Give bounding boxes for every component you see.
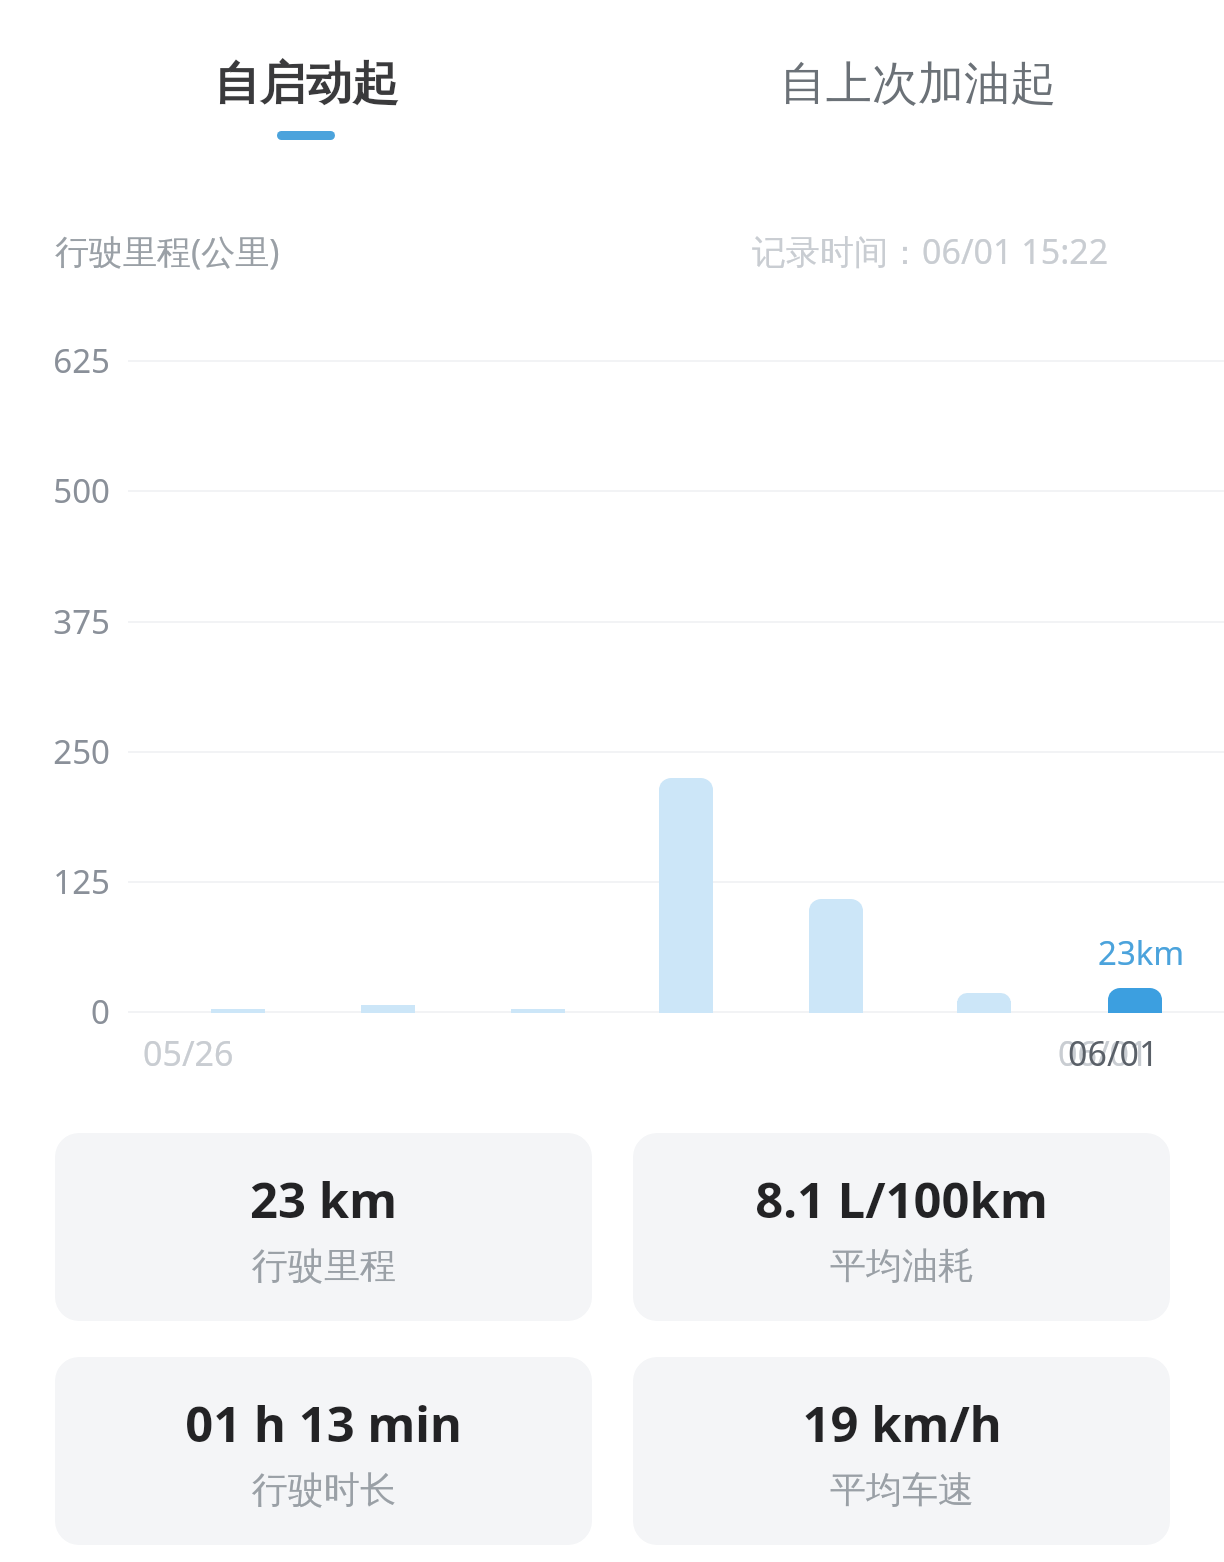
- button[interactable]: 01 h 13 min: [55, 1357, 592, 1545]
- staticText: 0: [91, 989, 110, 1034]
- staticText: 8.1 L/100km: [755, 1166, 1048, 1233]
- button[interactable]: 自启动起: [0, 0, 612, 150]
- button[interactable]: 自上次加油起: [612, 0, 1224, 150]
- staticText: 23 km: [250, 1166, 397, 1233]
- button[interactable]: 19 km/h: [633, 1357, 1170, 1545]
- staticText: 行驶时长: [252, 1467, 396, 1512]
- staticText: 06/01: [1058, 1030, 1149, 1076]
- staticText: 125: [53, 859, 110, 904]
- staticText: 平均油耗: [830, 1243, 974, 1288]
- staticText: 625: [53, 338, 110, 383]
- staticText: 行驶里程(公里): [55, 228, 280, 274]
- staticText: 500: [53, 468, 110, 513]
- button[interactable]: 8.1 L/100km: [633, 1133, 1170, 1321]
- staticText: 05/26: [143, 1030, 234, 1076]
- button[interactable]: 23 km: [55, 1133, 592, 1321]
- staticText: 06/01: [1068, 1030, 1159, 1076]
- staticText: 自上次加油起: [780, 55, 1056, 113]
- staticText: 01 h 13 min: [185, 1390, 462, 1457]
- staticText: 自启动起: [214, 55, 398, 113]
- staticText: 250: [53, 729, 110, 774]
- staticText: 23km: [1098, 930, 1185, 975]
- staticText: 375: [53, 599, 110, 644]
- staticText: 平均车速: [830, 1467, 974, 1512]
- staticText: 19 km/h: [802, 1390, 1002, 1457]
- staticText: 记录时间：06/01 15:22: [752, 228, 1109, 274]
- staticText: 行驶里程: [252, 1243, 396, 1288]
